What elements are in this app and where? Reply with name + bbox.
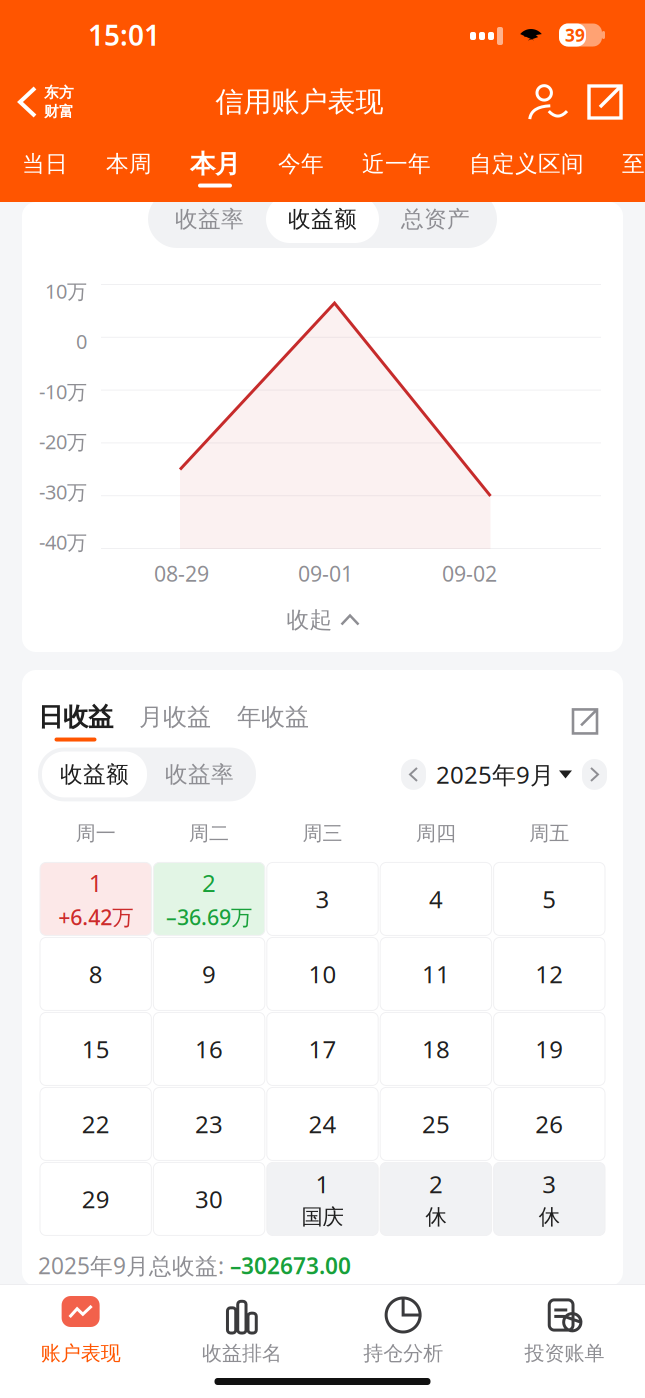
staticText: 自定义区间 [469, 150, 584, 178]
button[interactable]: 9 [152, 936, 266, 1011]
button[interactable]: 本月 [171, 137, 259, 199]
button[interactable]: 30 [152, 1161, 266, 1236]
button[interactable]: 至 [603, 137, 645, 199]
staticText: 周五 [529, 821, 569, 846]
button[interactable]: 23 [152, 1086, 266, 1161]
staticText: 24 [308, 1108, 336, 1140]
staticText: 12 [535, 958, 563, 990]
button[interactable]: 2025年9月 [436, 758, 572, 790]
button[interactable]: 东方 [0, 70, 84, 134]
button[interactable]: 3 [493, 1161, 606, 1236]
staticText: 8 [89, 958, 103, 990]
staticText: 5 [542, 883, 556, 915]
staticText: -30万 [39, 478, 87, 505]
staticText: 3 [542, 1168, 556, 1200]
button[interactable]: 1 [266, 1161, 379, 1236]
staticText: 财富 [44, 102, 74, 120]
staticText: 08-29 [154, 559, 209, 588]
button[interactable]: 10 [266, 936, 379, 1011]
button[interactable]: 5 [493, 861, 606, 936]
staticText: +6.42万 [58, 903, 133, 931]
staticText: 至 [622, 150, 645, 178]
button[interactable]: Next month [582, 759, 607, 790]
button[interactable]: 8 [39, 936, 152, 1011]
button[interactable]: 15 [39, 1011, 152, 1086]
staticText: –36.69万 [166, 903, 252, 931]
button[interactable]: 24 [266, 1086, 379, 1161]
button[interactable]: 收益率 [147, 751, 252, 797]
staticText: 2025年9月 [436, 758, 554, 790]
button[interactable]: Previous month [401, 759, 426, 790]
staticText: 11 [422, 958, 450, 990]
button[interactable]: 账户表现 [0, 1296, 161, 1366]
button[interactable]: 2 [152, 861, 266, 936]
button[interactable]: 收起 [22, 588, 623, 652]
staticText: 投资账单 [524, 1341, 604, 1366]
staticText: 2 [202, 867, 216, 899]
button[interactable]: 1 [39, 861, 152, 936]
staticText: 收益率 [175, 205, 244, 233]
button[interactable]: 持仓分析 [322, 1296, 484, 1366]
staticText: 29 [82, 1183, 110, 1215]
staticText: 4 [429, 883, 443, 915]
staticText: 本月 [190, 148, 240, 179]
button[interactable]: 17 [266, 1011, 379, 1086]
staticText: 22 [82, 1108, 110, 1140]
staticText: 17 [308, 1033, 336, 1065]
button[interactable]: 本周 [87, 137, 171, 199]
button[interactable]: 2 [379, 1161, 493, 1236]
staticText: 39 [565, 23, 585, 46]
button[interactable]: 4 [379, 861, 493, 936]
staticText: 持仓分析 [363, 1341, 443, 1366]
button[interactable]: 投资账单 [484, 1296, 645, 1366]
button[interactable]: Hide amounts [515, 70, 581, 134]
button[interactable]: 收益率 [153, 195, 266, 243]
staticText: 周二 [189, 821, 229, 846]
button[interactable]: 11 [379, 936, 493, 1011]
button[interactable]: 年收益 [237, 702, 335, 741]
staticText: -10万 [39, 378, 87, 405]
staticText: 总资产 [401, 205, 470, 233]
staticText: 30 [195, 1183, 223, 1215]
staticText: 23 [195, 1108, 223, 1140]
button[interactable]: 16 [152, 1011, 266, 1086]
button[interactable]: 今年 [259, 137, 343, 199]
staticText: 周四 [416, 821, 456, 846]
staticText: 休 [539, 1204, 560, 1230]
button[interactable]: 29 [39, 1161, 152, 1236]
button[interactable]: 12 [493, 936, 606, 1011]
staticText: 18 [422, 1033, 450, 1065]
button[interactable]: Share [581, 70, 645, 134]
button[interactable]: 月收益 [139, 702, 237, 741]
button[interactable]: 日收益 [38, 701, 139, 741]
button[interactable]: Share [563, 699, 607, 743]
staticText: 25 [422, 1108, 450, 1140]
button[interactable]: 收益排名 [161, 1296, 322, 1366]
staticText: 9 [202, 958, 216, 990]
staticText: 近一年 [362, 150, 431, 178]
staticText: 东方 [44, 83, 74, 101]
button[interactable]: 19 [493, 1011, 606, 1086]
staticText: 国庆 [301, 1204, 343, 1230]
button[interactable]: 当日 [3, 137, 87, 199]
staticText: 收益率 [165, 760, 234, 788]
staticText: 账户表现 [41, 1341, 121, 1366]
staticText: 日收益 [38, 701, 113, 732]
staticText: 3 [315, 883, 329, 915]
button[interactable]: 近一年 [343, 137, 450, 199]
staticText: -20万 [39, 428, 87, 455]
staticText: 1 [89, 867, 103, 899]
staticText: 当日 [22, 150, 68, 178]
button[interactable]: 收益额 [266, 195, 379, 243]
button[interactable]: 自定义区间 [450, 137, 603, 199]
button[interactable]: 26 [493, 1086, 606, 1161]
staticText: 收起 [286, 606, 332, 634]
button[interactable]: 收益额 [42, 751, 147, 797]
button[interactable]: 22 [39, 1086, 152, 1161]
button[interactable]: 25 [379, 1086, 493, 1161]
button[interactable]: 18 [379, 1011, 493, 1086]
button[interactable]: 3 [266, 861, 379, 936]
staticText: 16 [195, 1033, 223, 1065]
button[interactable]: 总资产 [379, 195, 492, 243]
staticText: 今年 [278, 150, 324, 178]
